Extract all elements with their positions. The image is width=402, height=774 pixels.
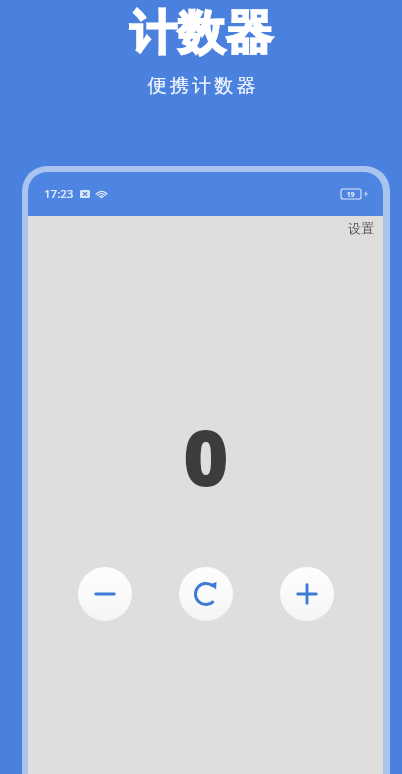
- staticText: 0: [183, 403, 229, 509]
- staticText: 19: [347, 190, 355, 199]
- button[interactable]: Reset: [179, 567, 233, 621]
- button[interactable]: 设置: [339, 218, 383, 238]
- staticText: 17:23: [44, 186, 74, 202]
- button[interactable]: Increase: [280, 567, 334, 621]
- staticText: 计数器: [129, 4, 273, 63]
- staticText: 便携计数器: [146, 74, 257, 98]
- button[interactable]: Decrease: [78, 567, 132, 621]
- staticText: 设置: [348, 220, 374, 236]
